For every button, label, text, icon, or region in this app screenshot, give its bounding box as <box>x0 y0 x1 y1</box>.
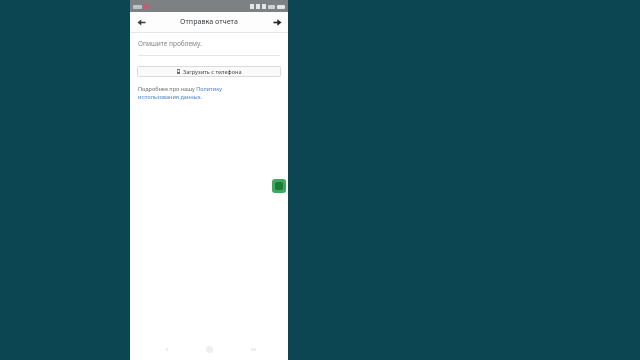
staticText: Загрузить с телефона <box>183 68 242 75</box>
button[interactable]: Опишите проблему. <box>138 39 280 56</box>
button[interactable]: Подробнее про нашу Политику использовани… <box>138 85 280 101</box>
staticText: Подробнее про нашу Политику использовани… <box>138 85 222 101</box>
button[interactable]: Back <box>134 15 148 29</box>
button[interactable]: Home <box>201 341 217 357</box>
button[interactable]: Загрузить с телефона <box>137 66 281 77</box>
button[interactable]: Recents <box>245 341 261 357</box>
button[interactable]: Send <box>270 15 284 29</box>
staticText: Опишите проблему. <box>138 39 202 48</box>
staticText: Отправка отчета <box>180 17 238 27</box>
button[interactable]: WhatsApp <box>272 179 286 193</box>
